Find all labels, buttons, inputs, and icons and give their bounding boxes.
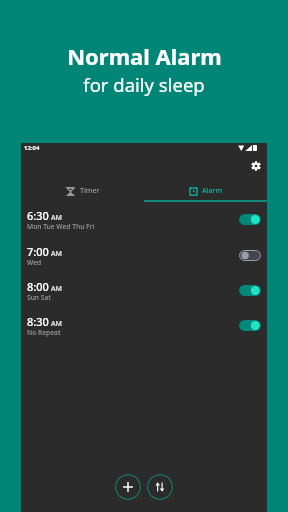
- staticText: AM: [51, 249, 63, 259]
- button[interactable]: Timer: [21, 178, 144, 204]
- button[interactable]: 6:30: [21, 204, 267, 240]
- button[interactable]: Alarm enabled: [239, 285, 261, 296]
- button[interactable]: Add alarm: [115, 474, 141, 500]
- button[interactable]: Sort alarms: [147, 474, 173, 500]
- staticText: No Repeat: [27, 328, 61, 337]
- staticText: Wed: [27, 258, 42, 267]
- button[interactable]: 7:00: [21, 240, 267, 276]
- staticText: for daily sleep: [83, 72, 205, 97]
- staticText: AM: [51, 319, 63, 329]
- staticText: 6:30: [27, 208, 49, 223]
- staticText: Mon Tue Wed Thu Fri: [27, 222, 95, 231]
- staticText: Normal Alarm: [67, 41, 222, 71]
- staticText: Alarm: [202, 186, 223, 196]
- button[interactable]: Alarm enabled: [239, 214, 261, 225]
- staticText: 12:04: [24, 144, 40, 152]
- button[interactable]: Settings: [247, 157, 265, 175]
- staticText: 8:00: [27, 279, 49, 294]
- staticText: Timer: [80, 186, 100, 196]
- staticText: 7:00: [27, 244, 49, 259]
- button[interactable]: Alarm: [144, 178, 267, 204]
- button[interactable]: Alarm disabled: [239, 250, 261, 261]
- staticText: AM: [51, 213, 63, 223]
- button[interactable]: Alarm enabled: [239, 320, 261, 331]
- button[interactable]: 8:00: [21, 275, 267, 311]
- staticText: AM: [51, 284, 63, 294]
- staticText: 8:30: [27, 314, 49, 329]
- staticText: Sun Sat: [27, 293, 51, 302]
- button[interactable]: 8:30: [21, 310, 267, 346]
